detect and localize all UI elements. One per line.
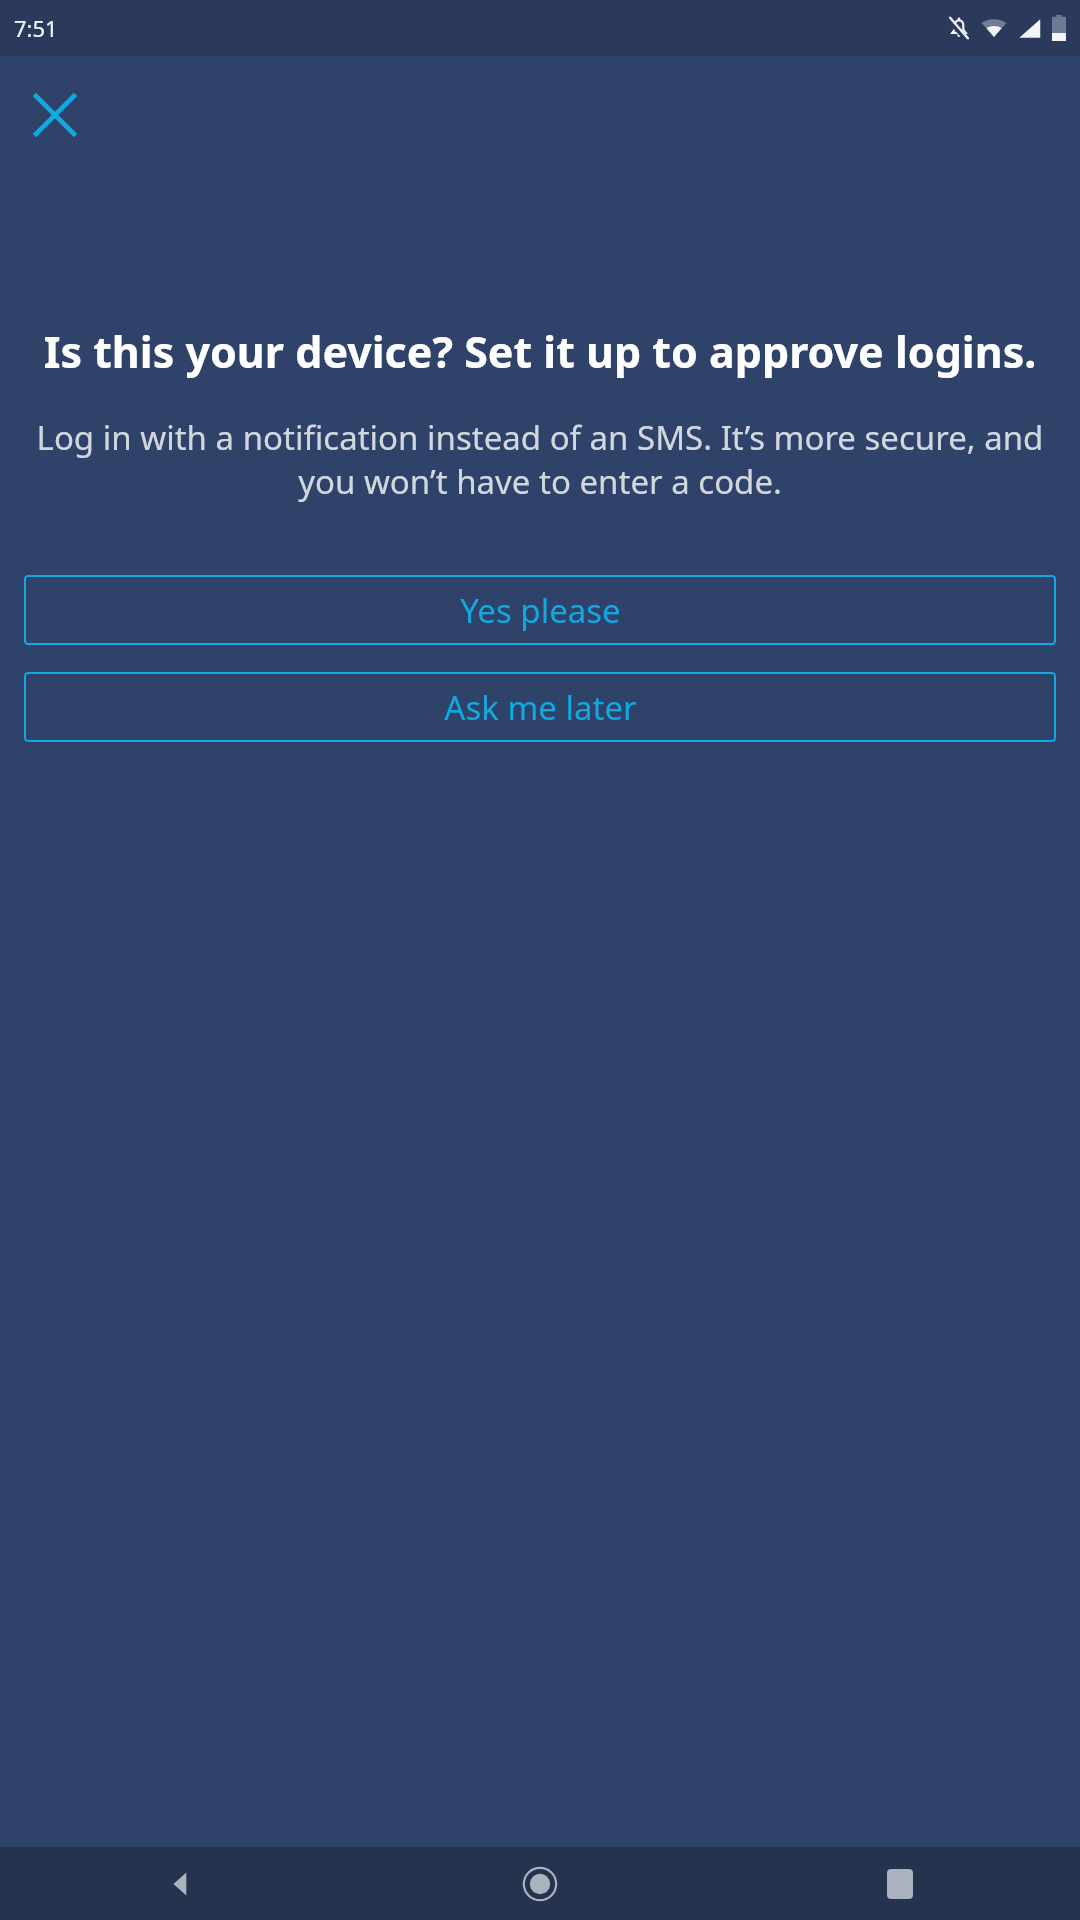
staticText: Log in with a notification instead of an… [24, 415, 1056, 503]
staticText: Is this your device? Set it up to approv… [22, 322, 1058, 381]
staticText: 7:51 [14, 13, 58, 43]
button[interactable]: Back [0, 1847, 360, 1920]
staticText: Ask me later [444, 685, 637, 730]
staticText: Yes please [460, 588, 621, 633]
button[interactable]: Close [20, 80, 90, 150]
button[interactable]: Recent apps [720, 1847, 1080, 1920]
button[interactable]: Ask me later [24, 672, 1056, 742]
button[interactable]: Yes please [24, 575, 1056, 645]
button[interactable]: Home [360, 1847, 720, 1920]
